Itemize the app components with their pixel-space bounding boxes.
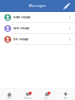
button[interactable]: Compose [62, 1, 71, 10]
staticText: Staff Messages [13, 38, 28, 41]
button[interactable]: More [56, 89, 75, 99]
button[interactable]: Home [0, 89, 19, 99]
staticText: More [64, 97, 68, 99]
staticText: Messages [29, 4, 46, 8]
staticText: Alerts [44, 97, 49, 99]
staticText: Messages [24, 97, 32, 99]
button[interactable]: Parent Messages [0, 23, 75, 34]
button[interactable]: Alerts [37, 89, 56, 99]
staticText: Student Messages [13, 16, 30, 19]
button[interactable]: Messages [19, 89, 38, 99]
button[interactable]: Staff Messages [0, 34, 75, 45]
button[interactable]: Student Messages [0, 12, 75, 23]
staticText: Home [7, 97, 11, 99]
staticText: Parent Messages [13, 27, 29, 30]
